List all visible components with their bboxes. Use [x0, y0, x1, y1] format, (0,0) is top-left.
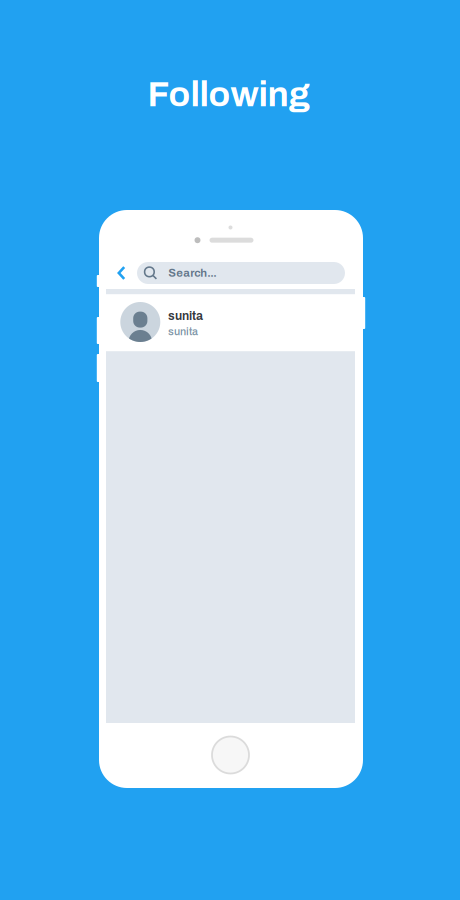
staticText: Following [147, 75, 309, 114]
button[interactable]: sunita [106, 294, 355, 351]
staticText: sunita [168, 326, 198, 337]
button[interactable]: Search... [137, 262, 345, 284]
staticText: Search... [168, 267, 216, 279]
staticText: sunita [168, 310, 203, 323]
button[interactable]: Back [110, 261, 132, 285]
